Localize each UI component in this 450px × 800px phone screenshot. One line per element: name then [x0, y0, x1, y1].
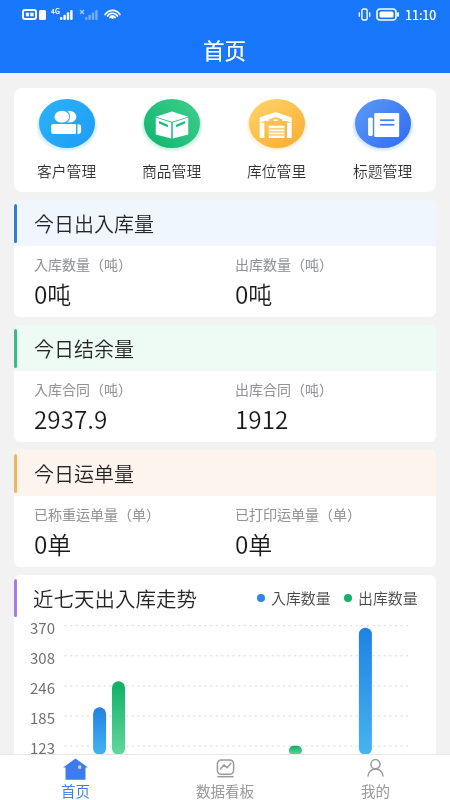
staticText: 308 [14, 647, 55, 669]
button[interactable]: 数据看板 [150, 755, 300, 800]
staticText: 2937.9 [34, 401, 108, 436]
staticText: 标题管理 [353, 160, 413, 181]
staticText: 0吨 [34, 276, 72, 311]
staticText: 首页 [203, 34, 247, 65]
staticText: 246 [14, 677, 55, 699]
staticText: 出库数量（吨） [235, 254, 333, 274]
staticText: 0单 [235, 526, 273, 561]
staticText: 商品管理 [142, 160, 202, 181]
staticText: 123 [14, 737, 55, 759]
button[interactable]: 我的 [300, 755, 450, 800]
staticText: 0单 [34, 526, 72, 561]
staticText: 4G [51, 6, 60, 16]
staticText: 已打印运单量（单） [235, 504, 361, 524]
staticText: 出库合同（吨） [235, 379, 333, 399]
staticText: 入库数量（吨） [34, 254, 132, 274]
staticText: 出库数量 [358, 587, 418, 609]
staticText: 入库数量 [271, 587, 331, 609]
button[interactable]: 库位管里 [224, 88, 330, 192]
staticText: 首页 [61, 780, 90, 800]
staticText: 近七天出入库走势 [33, 583, 197, 613]
staticText: 370 [14, 617, 55, 639]
staticText: 11:10 [405, 5, 437, 23]
staticText: 今日出入库量 [34, 209, 154, 238]
button[interactable]: 首页 [0, 755, 150, 800]
staticText: 今日结余量 [34, 334, 134, 363]
staticText: 我的 [361, 780, 390, 800]
button[interactable]: 标题管理 [330, 88, 436, 192]
staticText: 1912 [235, 401, 289, 436]
staticText: 185 [14, 707, 55, 729]
staticText: 数据看板 [196, 780, 254, 800]
staticText: 已称重运单量（单） [34, 504, 160, 524]
staticText: 客户管理 [37, 160, 97, 181]
button[interactable]: 客户管理 [14, 88, 119, 192]
staticText: 0吨 [235, 276, 273, 311]
staticText: 今日运单量 [34, 459, 134, 488]
staticText: 库位管里 [247, 160, 307, 181]
button[interactable]: 商品管理 [119, 88, 224, 192]
staticText: 入库合同（吨） [34, 379, 132, 399]
